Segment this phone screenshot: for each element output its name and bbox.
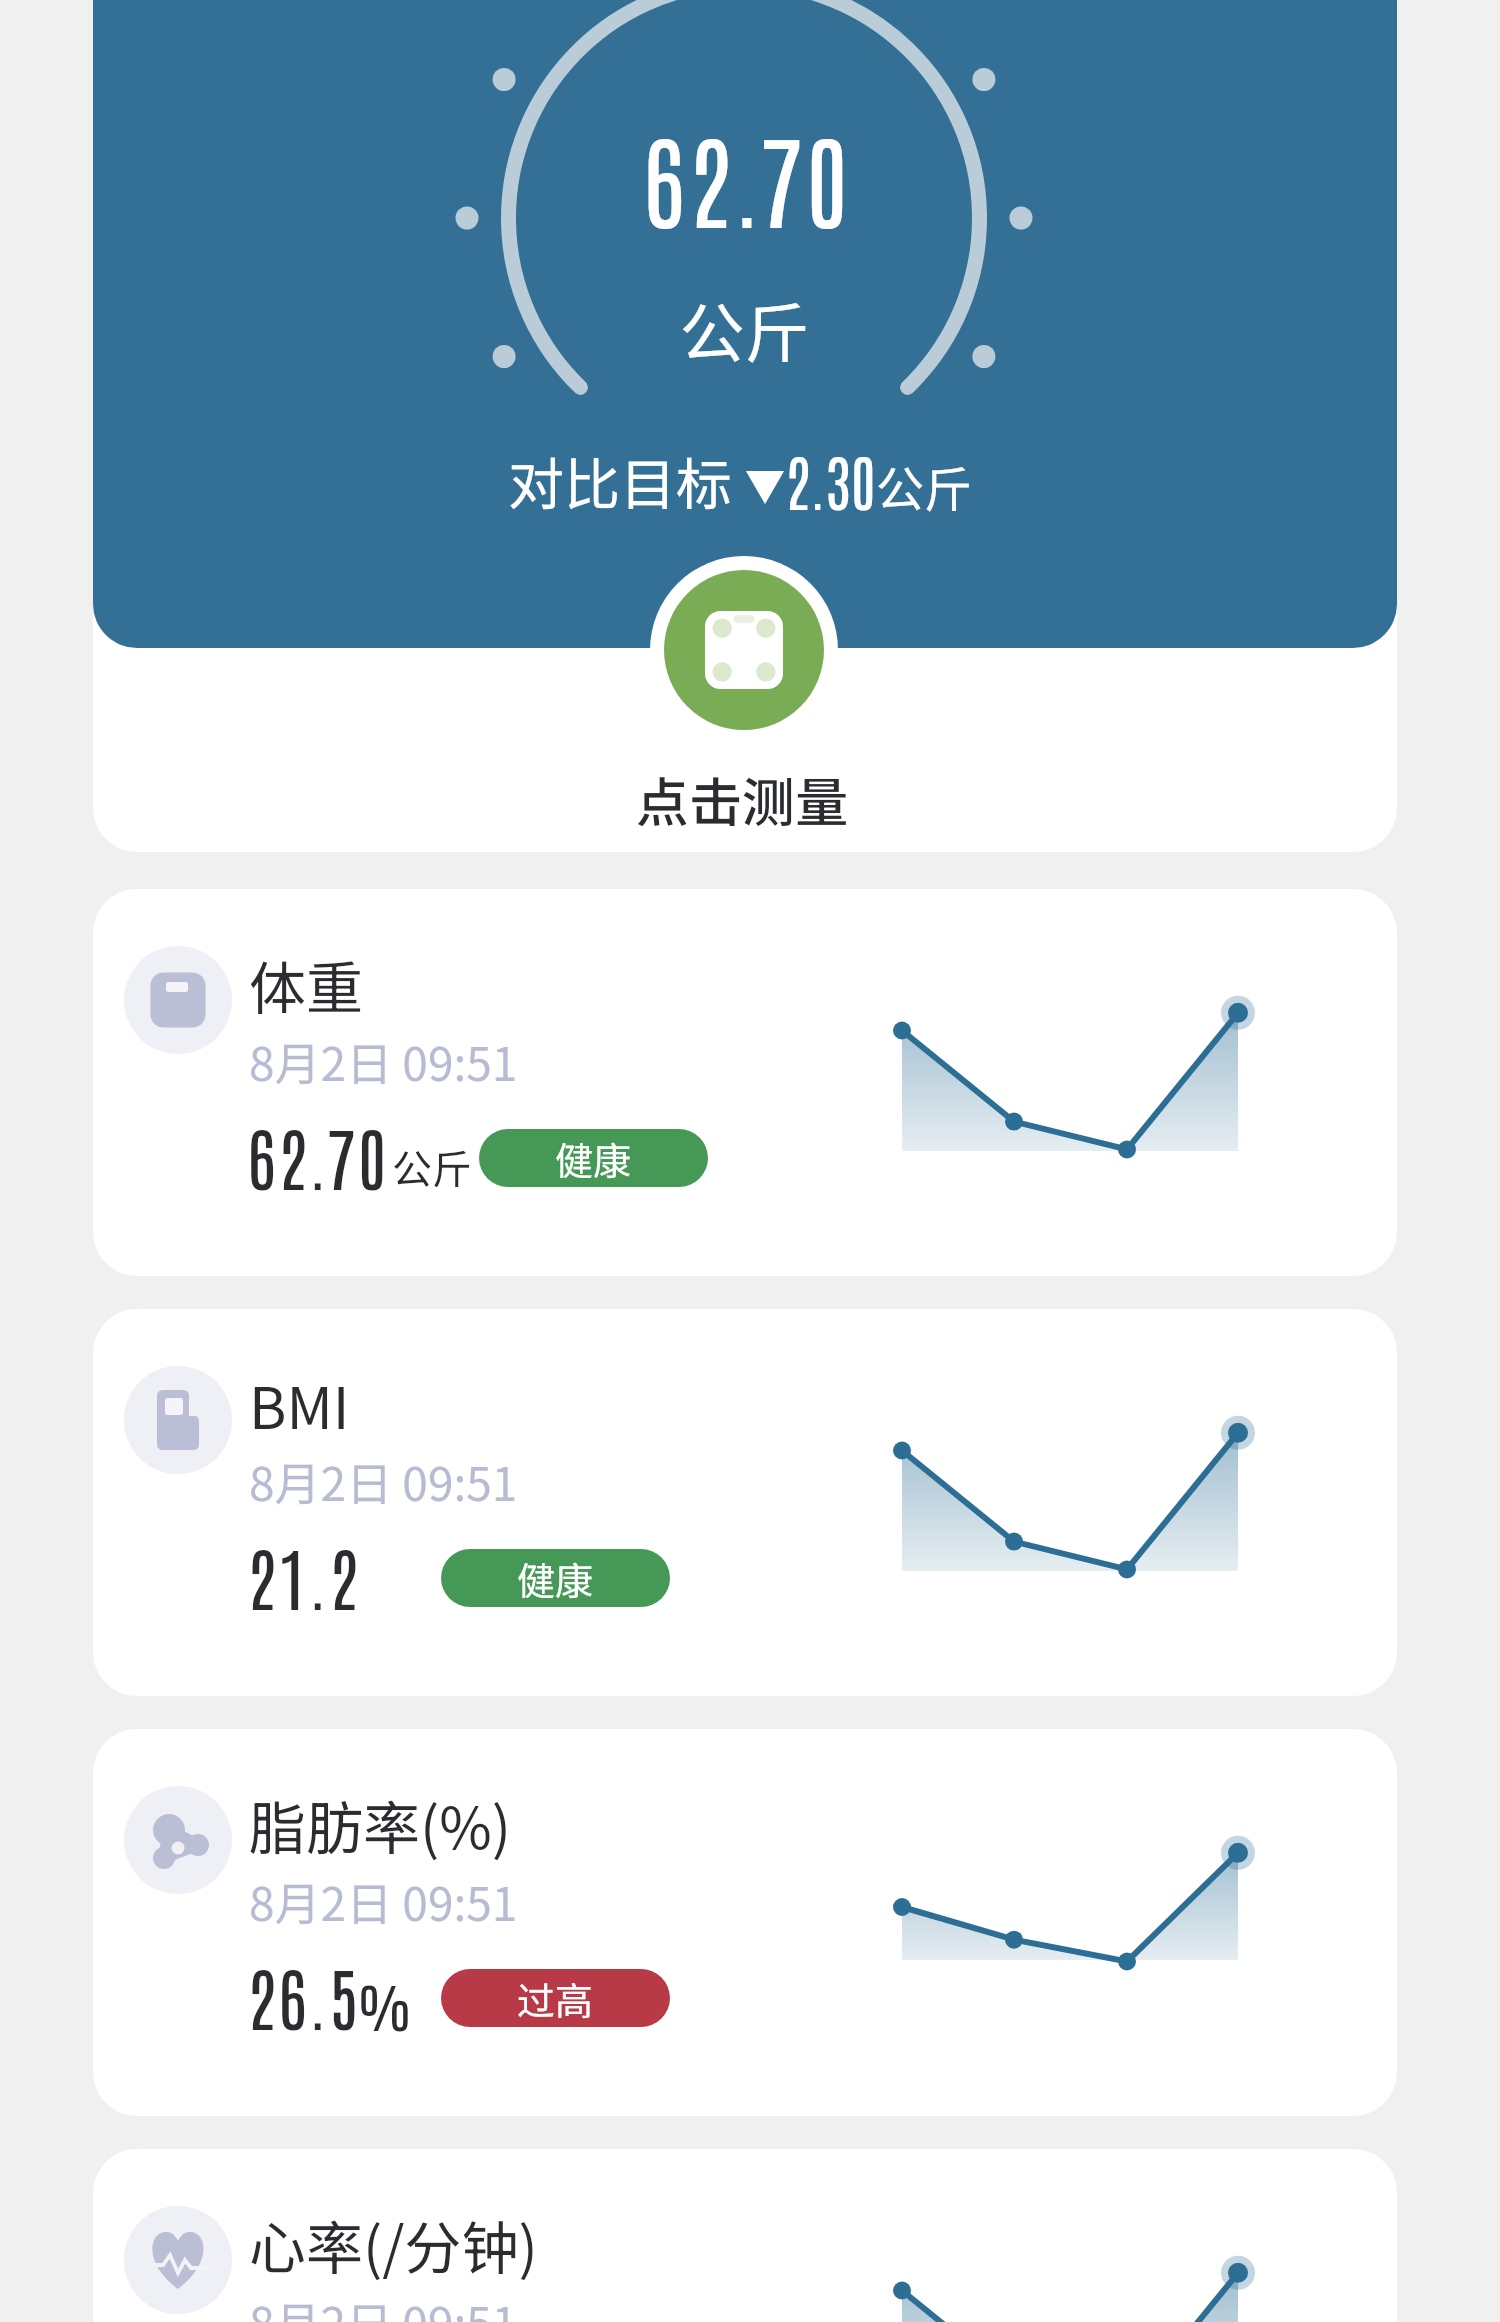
button[interactable]: 体重 — [93, 889, 1397, 1276]
staticText: 公斤 — [392, 1138, 472, 1196]
staticText: ▼ — [745, 455, 785, 513]
staticText: 62.70 — [642, 110, 852, 242]
staticText: 8月2日 09:51 — [249, 1028, 518, 1095]
staticText: BMI — [249, 1363, 350, 1446]
staticText: % — [357, 1971, 413, 2038]
staticText: 过高 — [517, 1971, 594, 2026]
staticText: 8月2日 09:51 — [249, 1868, 518, 1935]
staticText: 心率(/分钟) — [249, 2203, 538, 2286]
staticText: 点击测量 — [636, 761, 848, 838]
staticText: 62.70 — [247, 1110, 389, 1199]
staticText: 公斤 — [679, 282, 810, 376]
staticText: 公斤 — [876, 451, 973, 521]
staticText: 对比目标 — [508, 440, 745, 521]
staticText: 体重 — [249, 943, 363, 1026]
staticText: 脂肪率(%) — [249, 1783, 512, 1866]
button[interactable]: 脂肪率(%) — [93, 1729, 1397, 2116]
staticText: 8月2日 09:51 — [249, 1448, 518, 1515]
staticText: 健康 — [517, 1551, 594, 1606]
staticText: 26.5 — [247, 1950, 361, 2039]
button[interactable]: 心率(/分钟) — [93, 2149, 1397, 2322]
button[interactable]: 点击测量 — [650, 556, 838, 744]
staticText: 8月2日 09:51 — [249, 2288, 518, 2322]
staticText: 健康 — [555, 1131, 632, 1186]
staticText: 2.30 — [785, 441, 876, 519]
staticText: 21.2 — [247, 1530, 361, 1619]
button[interactable]: BMI — [93, 1309, 1397, 1696]
